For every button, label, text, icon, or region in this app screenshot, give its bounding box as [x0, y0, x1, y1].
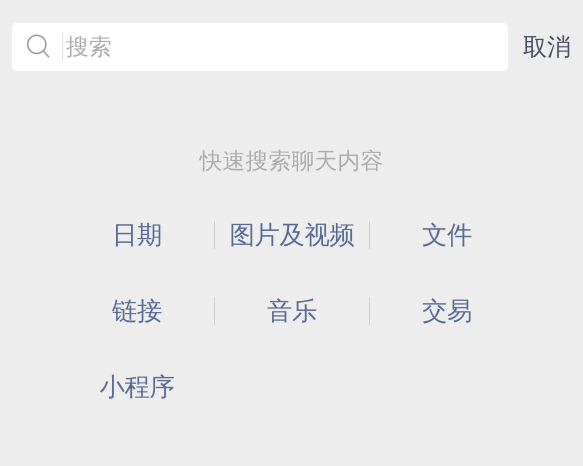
staticText: 日期	[112, 219, 162, 250]
button[interactable]: 文件	[370, 213, 524, 257]
staticText: 链接	[112, 295, 162, 326]
button[interactable]: 图片及视频	[215, 213, 369, 257]
button[interactable]: 取消	[508, 23, 583, 71]
button[interactable]: 交易	[370, 289, 524, 333]
button[interactable]: 小程序	[60, 365, 214, 409]
staticText: 小程序	[99, 371, 174, 402]
staticText: 音乐	[267, 295, 317, 326]
staticText: 取消	[523, 32, 571, 62]
staticText: 搜索	[66, 33, 112, 61]
staticText: 快速搜索聊天内容	[199, 147, 383, 175]
button[interactable]: 音乐	[215, 289, 369, 333]
button[interactable]: 搜索	[12, 23, 508, 71]
staticText: 文件	[422, 219, 472, 250]
button[interactable]: 日期	[60, 213, 214, 257]
staticText: 交易	[422, 295, 472, 326]
staticText: 图片及视频	[229, 219, 354, 250]
button[interactable]: 链接	[60, 289, 214, 333]
